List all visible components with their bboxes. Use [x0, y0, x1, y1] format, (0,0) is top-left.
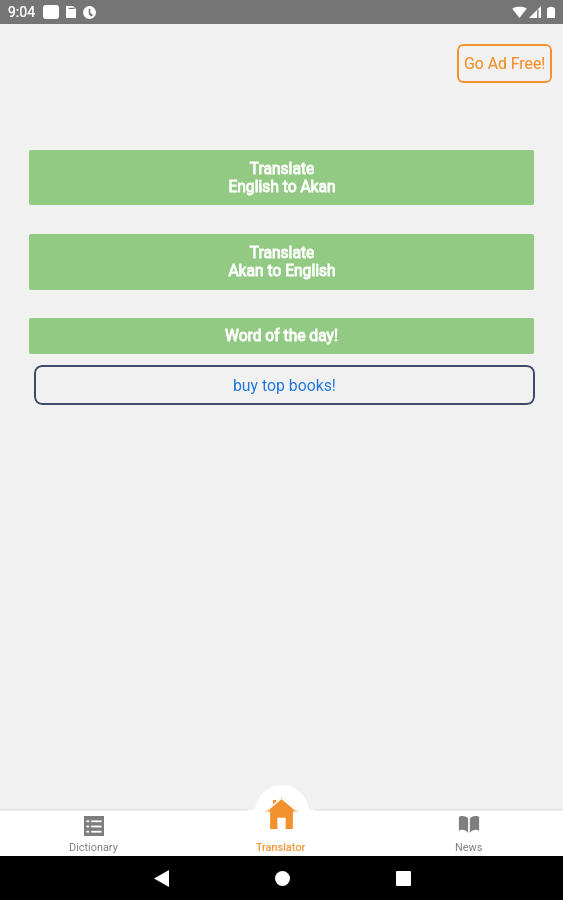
- staticText: buy top books!: [233, 376, 336, 395]
- button[interactable]: buy top books!: [34, 365, 535, 405]
- button[interactable]: Back: [121, 856, 201, 900]
- button[interactable]: Translator: [187, 810, 375, 856]
- staticText: Translate Akan to English: [228, 244, 336, 280]
- button[interactable]: Translate English to Akan: [29, 150, 534, 205]
- staticText: Word of the day!: [225, 327, 338, 345]
- button[interactable]: News: [375, 810, 563, 856]
- staticText: Translator: [256, 841, 306, 854]
- staticText: 9:04: [8, 4, 35, 20]
- button[interactable]: Translate Akan to English: [29, 234, 534, 290]
- button[interactable]: Word of the day!: [29, 318, 534, 354]
- button[interactable]: Home: [242, 856, 322, 900]
- staticText: News: [455, 841, 483, 854]
- staticText: Go Ad Free!: [464, 54, 546, 73]
- button[interactable]: Dictionary: [0, 810, 187, 856]
- staticText: Dictionary: [69, 841, 118, 854]
- button[interactable]: Recent apps: [363, 856, 443, 900]
- staticText: Translate English to Akan: [228, 160, 336, 196]
- button[interactable]: Go Ad Free!: [457, 44, 552, 83]
